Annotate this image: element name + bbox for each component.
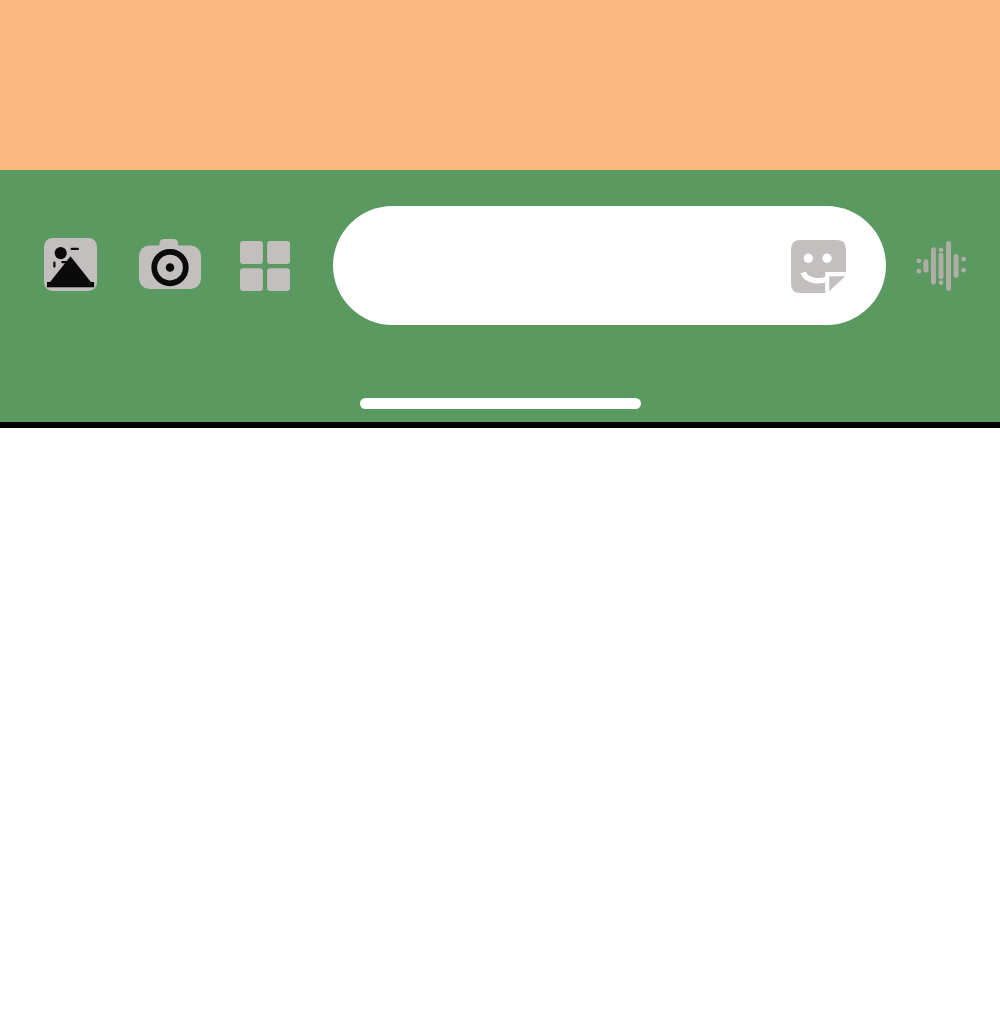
button[interactable]: Apps: [240, 241, 290, 291]
button[interactable]: Photos: [44, 238, 97, 291]
button[interactable]: [333, 206, 886, 325]
button[interactable]: Stickers: [791, 240, 846, 293]
button[interactable]: Camera: [139, 239, 201, 289]
button[interactable]: Voice input: [915, 240, 967, 292]
